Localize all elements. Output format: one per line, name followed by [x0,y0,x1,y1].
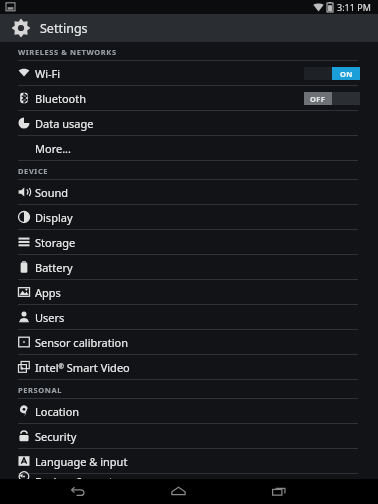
button[interactable]: Sound [0,180,378,204]
staticText: Wi-Fi [35,66,61,81]
button[interactable]: Data usage [0,111,378,135]
staticText: DEVICE [18,166,49,176]
staticText: More... [35,141,72,156]
staticText: Storage [35,235,76,250]
button[interactable]: Recent apps [262,479,296,504]
staticText: Battery [35,260,73,275]
button[interactable]: Bluetooth [0,86,378,110]
staticText: Intel® Smart Video [35,360,130,375]
button[interactable]: Home [161,479,195,504]
staticText: Apps [35,285,61,300]
staticText: Bluetooth [35,91,87,106]
button[interactable]: Users [0,305,378,329]
button[interactable]: Backup & reset [0,474,378,479]
staticText: Backup & reset [35,474,113,479]
button[interactable]: Display [0,205,378,229]
button[interactable]: Wi-Fi [0,61,378,85]
button[interactable]: Security [0,424,378,448]
button[interactable]: Bluetooth off [304,92,360,105]
staticText: Security [35,429,77,444]
staticText: Sound [35,185,69,200]
staticText: Display [35,210,73,225]
button[interactable]: Settings [0,14,378,42]
button[interactable]: Sensor calibration [0,330,378,354]
staticText: ON [340,69,353,79]
staticText: OFF [310,94,326,104]
staticText: Language & input [35,454,128,469]
staticText: 3:11 PM [337,1,371,13]
staticText: WIRELESS & NETWORKS [18,47,117,57]
staticText: Location [35,404,80,419]
button[interactable]: Language & input [0,449,378,473]
staticText: Settings [40,20,88,37]
button[interactable]: Intel® Smart Video [0,355,378,379]
button[interactable]: Location [0,399,378,423]
button[interactable]: Battery [0,255,378,279]
button[interactable]: Storage [0,230,378,254]
button[interactable]: Apps [0,280,378,304]
staticText: Data usage [35,116,94,131]
staticText: Sensor calibration [35,335,129,350]
staticText: Users [35,310,65,325]
button[interactable]: More... [0,136,378,160]
button[interactable]: Wi-Fi on [304,67,360,80]
staticText: PERSONAL [18,385,63,395]
button[interactable]: Back [60,479,94,504]
